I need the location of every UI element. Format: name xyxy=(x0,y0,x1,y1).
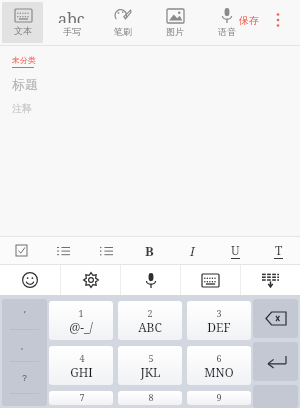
button[interactable]: 6 xyxy=(187,346,251,385)
button[interactable]: Italic xyxy=(171,237,214,264)
staticText: 手写 xyxy=(63,26,81,37)
button[interactable]: 2 xyxy=(118,301,182,340)
button[interactable]: Numbered list xyxy=(42,237,85,264)
button[interactable]: 8 xyxy=(118,391,182,405)
button[interactable]: Settings xyxy=(61,265,120,295)
staticText: 未分类 xyxy=(12,55,36,65)
staticText: GHI xyxy=(70,364,93,380)
button[interactable]: 保存 xyxy=(236,11,262,30)
button[interactable]: Checklist xyxy=(0,237,42,264)
staticText: 注释 xyxy=(12,102,32,115)
staticText: 4 xyxy=(79,352,85,364)
button[interactable]: Hide keyboard xyxy=(241,265,300,295)
button[interactable]: 图片 xyxy=(151,2,199,43)
button[interactable]: Enter xyxy=(253,342,298,381)
staticText: I xyxy=(190,242,195,260)
staticText: 2 xyxy=(147,307,153,319)
button[interactable]: 9 xyxy=(187,391,251,405)
button[interactable]: 7 xyxy=(49,391,113,405)
staticText: 8 xyxy=(148,391,154,403)
staticText: DEF xyxy=(207,319,231,335)
button[interactable]: Bold xyxy=(128,237,171,264)
button[interactable]: 文本 xyxy=(2,2,43,43)
staticText: abc xyxy=(58,8,85,23)
staticText: ？ xyxy=(20,372,29,383)
staticText: 。 xyxy=(20,340,29,351)
staticText: 7 xyxy=(79,391,85,403)
button[interactable]: Emoji xyxy=(0,265,60,295)
staticText: 标题 xyxy=(12,76,38,92)
button[interactable]: Delete xyxy=(253,299,298,338)
staticText: 笔刷 xyxy=(114,26,132,37)
staticText: ABC xyxy=(138,319,162,335)
staticText: @-_/ xyxy=(69,319,93,335)
button[interactable]: Bulleted list xyxy=(85,237,128,264)
button[interactable]: 4 xyxy=(49,346,113,385)
button[interactable]: More options xyxy=(270,9,286,31)
staticText: 9 xyxy=(216,391,222,403)
button[interactable]: 3 xyxy=(187,301,251,340)
staticText: U xyxy=(231,242,240,258)
staticText: 1 xyxy=(78,307,84,319)
staticText: ’ xyxy=(24,308,26,320)
staticText: 6 xyxy=(216,352,222,364)
button[interactable]: 5 xyxy=(118,346,182,385)
staticText: JKL xyxy=(140,364,161,380)
staticText: 文本 xyxy=(14,25,32,36)
staticText: 5 xyxy=(148,352,154,364)
button[interactable]: 未分类 xyxy=(12,54,36,66)
button[interactable]: Switch keyboard xyxy=(181,265,240,295)
button[interactable]: 语音 xyxy=(203,2,251,43)
staticText: 3 xyxy=(216,307,222,319)
button[interactable]: 笔刷 xyxy=(99,2,147,43)
staticText: T xyxy=(275,242,283,258)
staticText: MNO xyxy=(204,364,234,380)
staticText: B xyxy=(145,242,154,260)
button[interactable]: Underline xyxy=(214,237,257,264)
button[interactable]: ？ xyxy=(2,362,47,393)
staticText: 语音 xyxy=(218,26,236,37)
button[interactable]: abc xyxy=(47,2,95,43)
button[interactable]: 1 xyxy=(49,301,113,340)
button[interactable]: Voice input xyxy=(121,265,180,295)
button[interactable]: Text color xyxy=(257,237,300,264)
staticText: 图片 xyxy=(166,26,184,37)
